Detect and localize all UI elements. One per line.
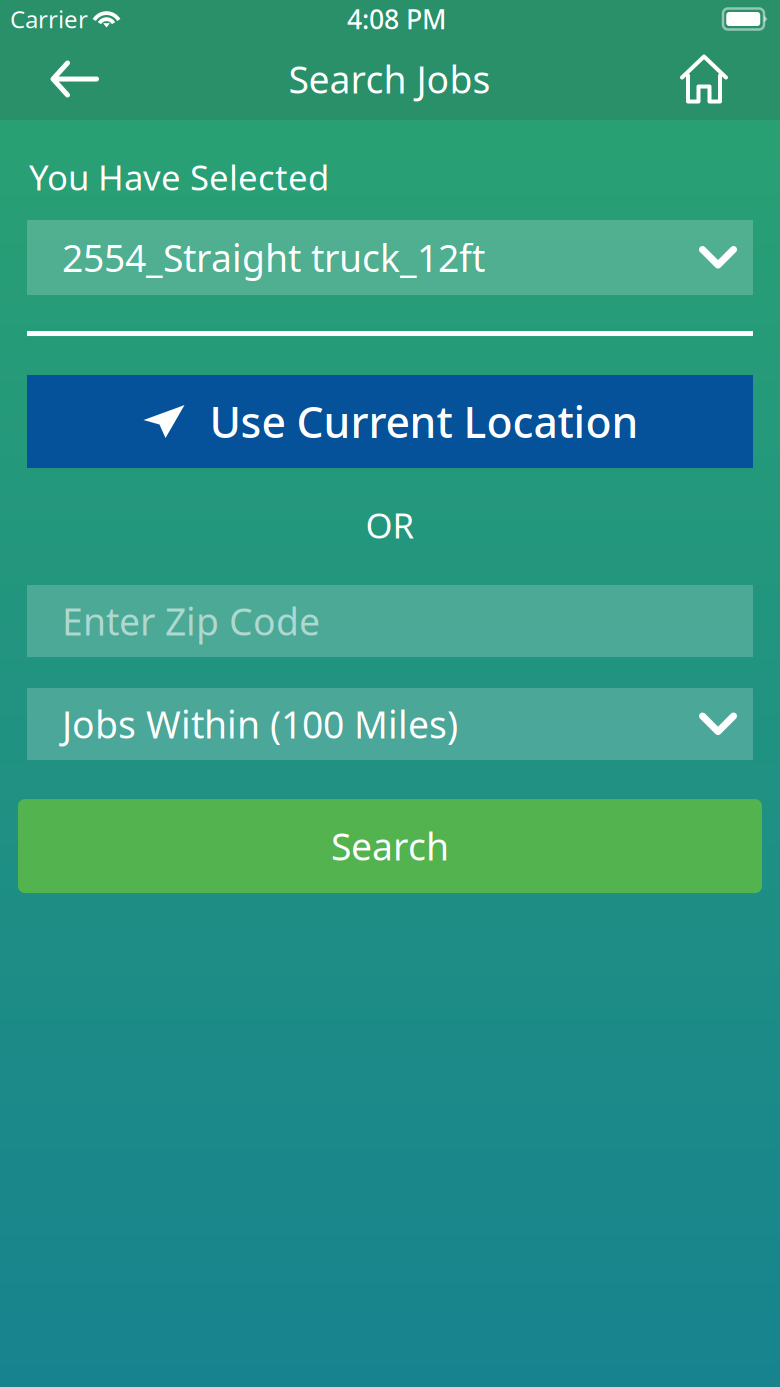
button[interactable]: Use Current Location [27,375,753,468]
button[interactable]: 2554_Straight truck_12ft [27,220,753,295]
button[interactable]: Back [15,38,135,120]
staticText: 2554_Straight truck_12ft [62,233,485,282]
staticText: OR [365,502,414,548]
staticText: Jobs Within (100 Miles) [62,699,458,749]
staticText: You Have Selected [29,154,329,200]
staticText: Search Jobs [288,54,490,104]
staticText: 4:08 PM [347,1,446,37]
button[interactable]: Search [18,799,762,893]
button[interactable]: Home [644,38,764,120]
staticText: Carrier [10,3,88,35]
staticText: Enter Zip Code [62,596,320,646]
button[interactable]: Jobs Within (100 Miles) [27,688,753,760]
staticText: Search [331,821,449,871]
staticText: Use Current Location [209,393,638,450]
button[interactable]: Enter Zip Code [27,585,753,657]
